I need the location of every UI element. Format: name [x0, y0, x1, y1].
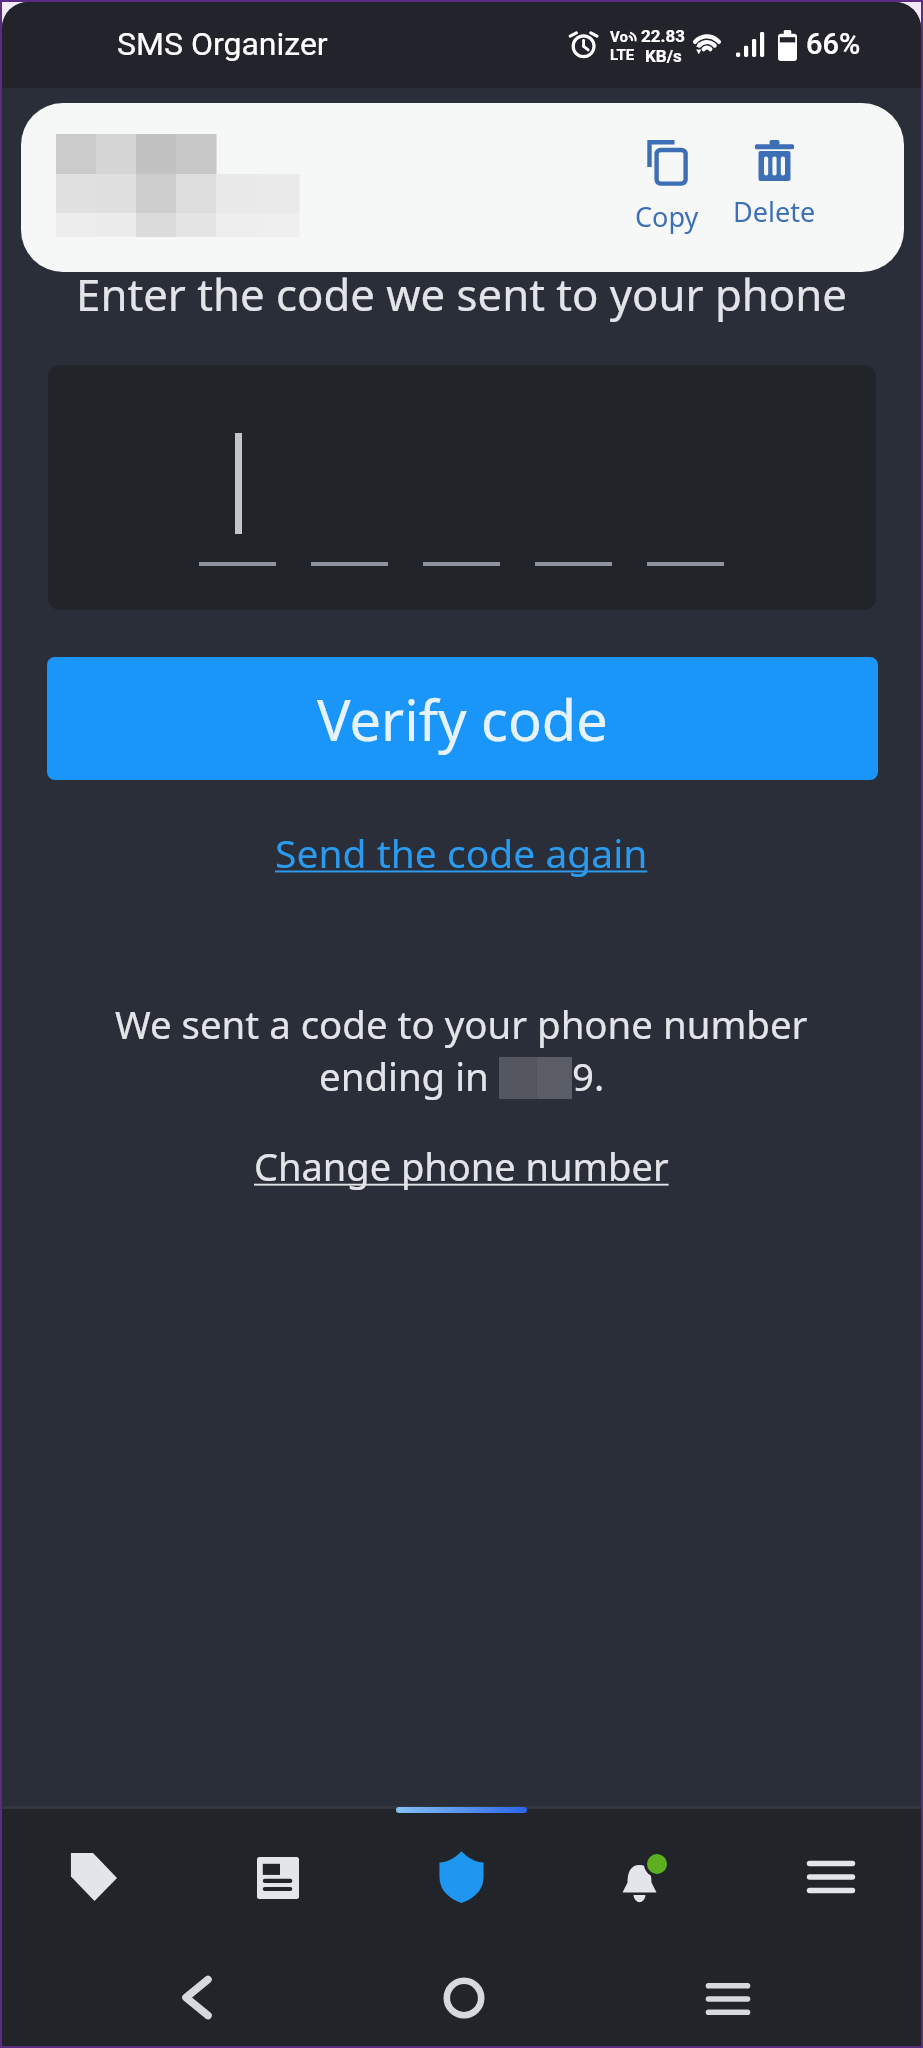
staticText: Delete — [733, 193, 816, 230]
staticText: LTE — [610, 46, 635, 64]
button[interactable] — [48, 365, 876, 610]
button[interactable]: Verify code — [47, 657, 878, 780]
staticText: Send the code again — [275, 826, 648, 879]
button[interactable]: Menu — [737, 1809, 921, 1942]
button[interactable]: Back — [150, 1946, 244, 2046]
button[interactable]: Tags — [2, 1809, 185, 1942]
staticText: KB/s — [645, 46, 682, 66]
button[interactable]: Delete — [714, 140, 834, 230]
button[interactable]: Recents — [681, 1947, 775, 2046]
staticText: Enter the code we sent to your phone — [2, 264, 921, 324]
button[interactable]: Home — [417, 1946, 511, 2046]
staticText: Vo — [610, 28, 628, 46]
staticText: 66% — [806, 27, 861, 61]
button[interactable]: Send the code again — [247, 808, 676, 897]
staticText: Verify code — [317, 681, 608, 757]
button[interactable]: Change phone number — [226, 1122, 697, 1210]
staticText: Change phone number — [254, 1140, 669, 1192]
staticText: We sent a code to your phone number — [115, 998, 808, 1050]
button[interactable]: Copy — [607, 140, 727, 235]
staticText: Copy — [635, 198, 699, 235]
staticText: SMS Organizer — [117, 25, 328, 63]
staticText: 22.83 — [641, 26, 685, 46]
button[interactable]: Inbox — [185, 1809, 369, 1942]
staticText: ending in — [319, 1050, 499, 1102]
button[interactable]: Notifications — [553, 1809, 737, 1942]
staticText: 9. — [572, 1050, 605, 1102]
button[interactable]: Protection — [369, 1809, 553, 1942]
